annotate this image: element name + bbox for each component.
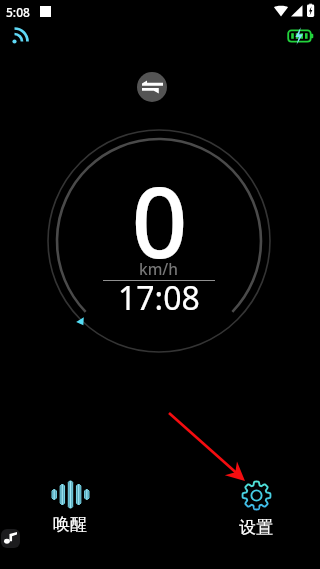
button[interactable]: 设置 — [221, 480, 291, 538]
staticText: 5:08 — [6, 4, 30, 20]
other: Signal — [12, 26, 30, 44]
button[interactable]: Swap units — [137, 72, 167, 102]
staticText: 0 — [131, 153, 188, 286]
staticText: 17:08 — [118, 276, 200, 320]
button[interactable]: Music — [1, 529, 20, 548]
staticText: km/h — [139, 258, 179, 279]
button[interactable]: 唤醒 — [35, 481, 105, 535]
staticText: 唤醒 — [53, 514, 87, 535]
staticText: 设置 — [239, 517, 273, 538]
other: Battery charging — [287, 27, 315, 45]
